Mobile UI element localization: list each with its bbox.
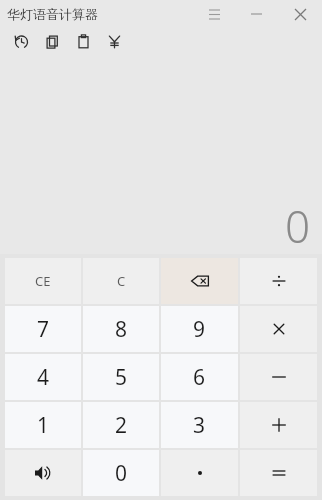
staticText: C <box>117 272 126 290</box>
button[interactable]: 1 <box>5 402 81 448</box>
staticText: 9 <box>193 315 206 344</box>
staticText: CE <box>35 272 51 290</box>
staticText: 3 <box>193 411 206 440</box>
staticText: 1 <box>37 411 50 440</box>
button[interactable]: CE <box>5 258 81 304</box>
button[interactable]: 6 <box>161 354 238 400</box>
staticText: 6 <box>193 363 206 392</box>
button[interactable]: C <box>83 258 159 304</box>
staticText: 0 <box>115 459 128 488</box>
button[interactable]: 4 <box>5 354 81 400</box>
button[interactable]: Minimize <box>234 0 278 28</box>
button[interactable]: 7 <box>5 306 81 352</box>
button[interactable]: Menu <box>194 0 234 28</box>
staticText: 8 <box>115 315 128 344</box>
button[interactable]: Copy <box>37 28 68 54</box>
button[interactable]: Plus <box>240 402 317 448</box>
staticText: 0 <box>284 196 310 244</box>
button[interactable]: Backspace <box>161 258 238 304</box>
button[interactable]: Multiply <box>240 306 317 352</box>
button[interactable]: 5 <box>83 354 159 400</box>
button[interactable]: Close <box>278 0 322 28</box>
button[interactable]: Paste <box>68 28 99 54</box>
button[interactable]: Minus <box>240 354 317 400</box>
staticText: 华灯语音计算器 <box>7 6 98 22</box>
button[interactable]: Voice input <box>5 450 81 496</box>
button[interactable]: Decimal point <box>161 450 238 496</box>
button[interactable]: 9 <box>161 306 238 352</box>
staticText: 5 <box>115 363 128 392</box>
staticText: 2 <box>115 411 128 440</box>
button[interactable]: Currency <box>99 28 130 54</box>
button[interactable]: Divide <box>240 258 317 304</box>
button[interactable]: History <box>6 28 37 54</box>
button[interactable]: 2 <box>83 402 159 448</box>
button[interactable]: 3 <box>161 402 238 448</box>
button[interactable]: 8 <box>83 306 159 352</box>
staticText: 7 <box>37 315 50 344</box>
staticText: 4 <box>37 363 50 392</box>
button[interactable]: 0 <box>83 450 159 496</box>
button[interactable]: Equals <box>240 450 317 496</box>
